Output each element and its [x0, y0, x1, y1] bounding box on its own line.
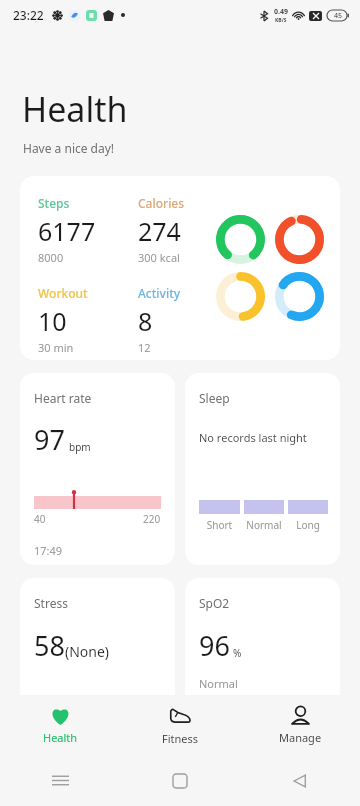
- staticText: Normal: [199, 676, 238, 691]
- staticText: 96: [199, 627, 230, 664]
- staticText: Short: [199, 518, 240, 532]
- staticText: 0.49: [274, 7, 288, 17]
- staticText: Workout: [38, 285, 88, 301]
- staticText: 40: [34, 512, 46, 526]
- staticText: Heart rate: [34, 390, 92, 406]
- staticText: Sleep: [199, 390, 230, 406]
- staticText: 17:49: [34, 543, 63, 558]
- staticText: 58: [34, 627, 65, 664]
- staticText: Have a nice day!: [23, 140, 115, 156]
- other: Health: [50, 705, 71, 726]
- staticText: Health: [22, 86, 128, 132]
- staticText: Normal: [244, 518, 284, 532]
- staticText: Fitness: [162, 731, 199, 746]
- staticText: 300 kcal: [138, 250, 180, 265]
- staticText: KB/S: [275, 17, 287, 24]
- button[interactable]: Fitness: [120, 695, 240, 755]
- staticText: 12: [138, 340, 151, 355]
- staticText: No records last night: [199, 430, 307, 445]
- button[interactable]: Recents: [0, 755, 120, 806]
- staticText: 6177: [38, 214, 96, 248]
- button[interactable]: Stress: [20, 578, 175, 708]
- button[interactable]: Manage: [240, 695, 360, 755]
- staticText: SpO2: [199, 595, 230, 611]
- staticText: Steps: [38, 195, 70, 211]
- staticText: Health: [43, 730, 78, 745]
- staticText: 8000: [38, 250, 64, 265]
- staticText: 30 min: [38, 340, 74, 355]
- staticText: Long: [288, 518, 328, 532]
- staticText: %: [233, 646, 242, 660]
- other: Fitness: [169, 705, 191, 727]
- button[interactable]: Home: [120, 755, 240, 806]
- staticText: 220: [143, 512, 161, 526]
- button[interactable]: Health: [0, 695, 120, 755]
- staticText: Stress: [34, 595, 68, 611]
- other: Manage: [290, 705, 311, 726]
- staticText: 23:22: [13, 7, 44, 23]
- staticText: Manage: [279, 730, 322, 745]
- staticText: Activity: [138, 285, 181, 301]
- staticText: 97: [34, 421, 65, 458]
- staticText: 10: [38, 304, 67, 338]
- staticText: (None): [65, 642, 110, 661]
- staticText: 8: [138, 304, 153, 338]
- staticText: 45: [334, 11, 343, 21]
- button[interactable]: Sleep: [185, 373, 340, 565]
- staticText: 274: [138, 214, 181, 248]
- button[interactable]: Back: [240, 755, 360, 806]
- staticText: bpm: [69, 440, 91, 454]
- button[interactable]: SpO2: [185, 578, 340, 708]
- button[interactable]: Steps: [20, 176, 340, 360]
- staticText: Calories: [138, 195, 185, 211]
- button[interactable]: Heart rate: [20, 373, 175, 565]
